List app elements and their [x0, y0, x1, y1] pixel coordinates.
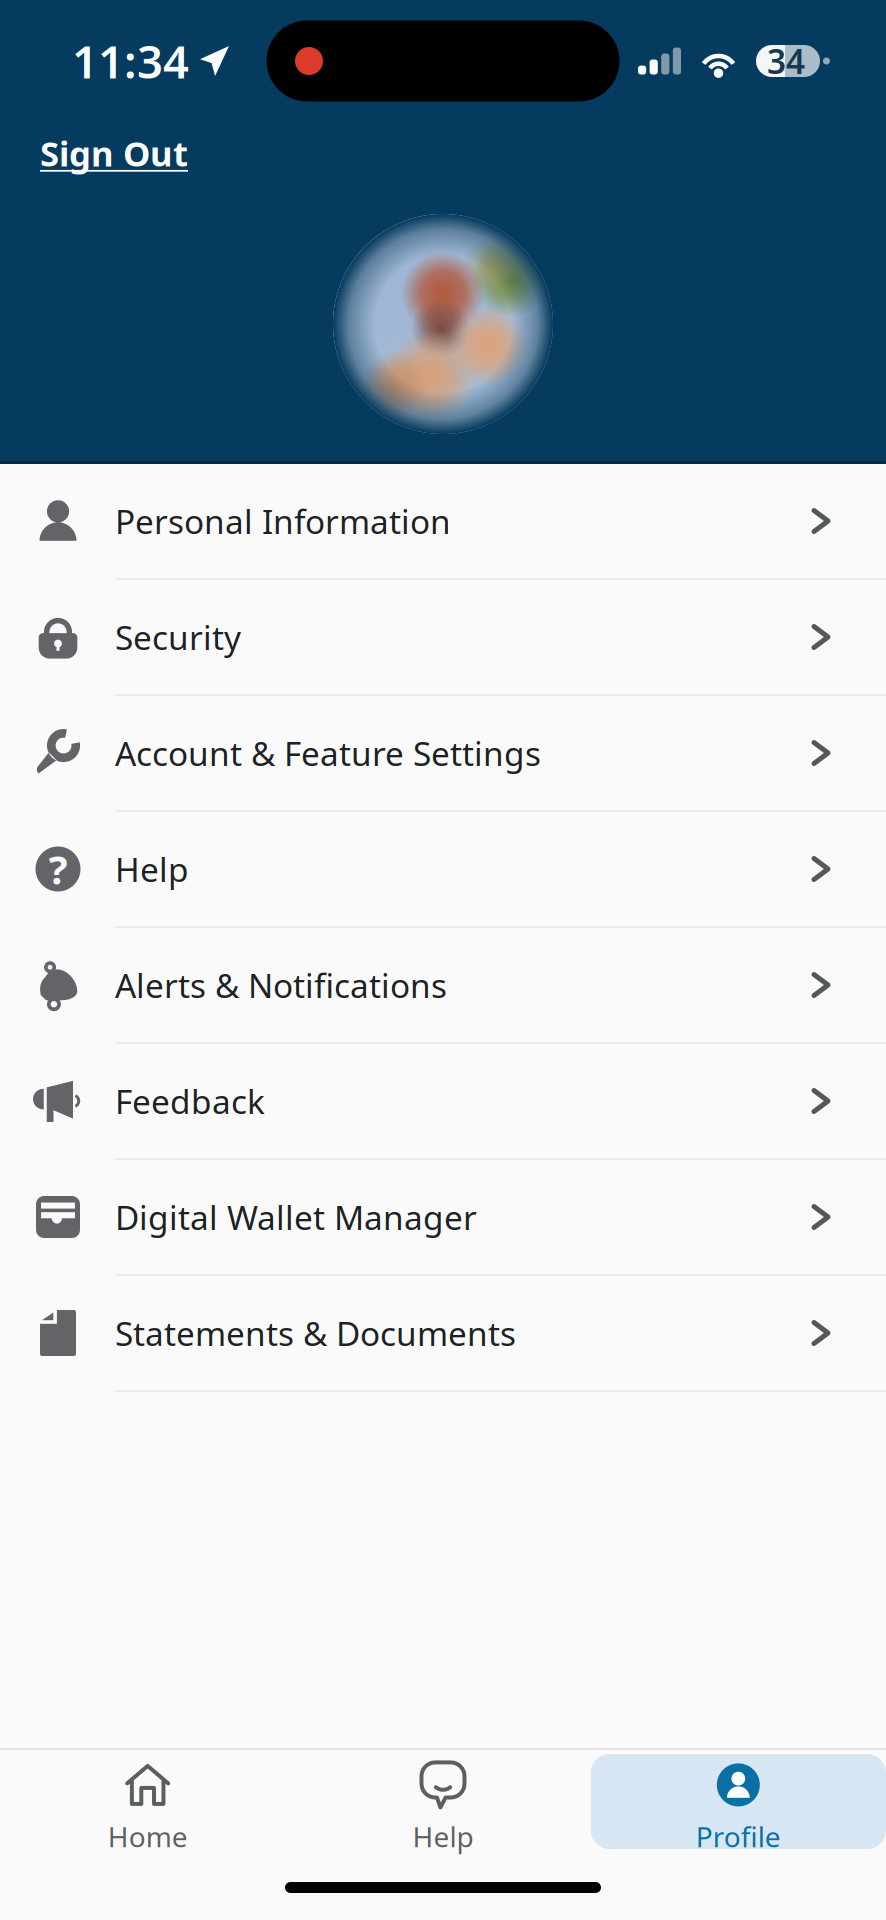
button[interactable]: Profile — [591, 1754, 886, 1849]
staticText: Account & Feature Settings — [115, 731, 541, 775]
staticText: 34 — [767, 39, 805, 83]
staticText: Feedback — [115, 1079, 265, 1123]
staticText: Digital Wallet Manager — [115, 1195, 477, 1239]
staticText: ? — [48, 842, 67, 895]
staticText: Alerts & Notifications — [115, 963, 447, 1007]
button[interactable]: ? — [0, 812, 886, 928]
staticText: 11:34 — [72, 31, 189, 91]
button[interactable]: Personal Information — [0, 464, 886, 580]
staticText: Profile — [696, 1818, 781, 1855]
button[interactable]: Sign Out — [38, 122, 190, 184]
button[interactable]: Digital Wallet Manager — [0, 1160, 886, 1276]
staticText: Help — [115, 847, 189, 891]
button[interactable]: Statements & Documents — [0, 1276, 886, 1392]
staticText: Home — [108, 1818, 188, 1855]
button[interactable]: Help — [295, 1754, 591, 1849]
staticText: Help — [412, 1818, 473, 1855]
button[interactable]: Security — [0, 580, 886, 696]
button[interactable]: Home — [0, 1754, 295, 1849]
button[interactable]: Account & Feature Settings — [0, 696, 886, 812]
staticText: Sign Out — [40, 130, 188, 176]
staticText: Security — [115, 615, 241, 659]
staticText: Statements & Documents — [115, 1311, 516, 1355]
button[interactable]: Alerts & Notifications — [0, 928, 886, 1044]
staticText: Personal Information — [115, 499, 451, 543]
button[interactable]: Feedback — [0, 1044, 886, 1160]
